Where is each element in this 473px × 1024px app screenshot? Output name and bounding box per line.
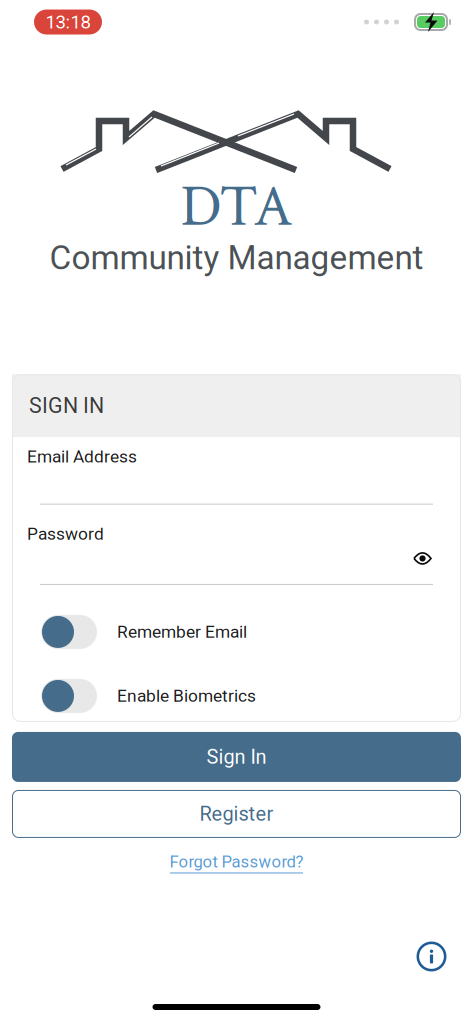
- button[interactable]: Forgot Password?: [169, 852, 303, 873]
- staticText: Community Management: [49, 238, 423, 277]
- staticText: SIGN IN: [29, 393, 104, 418]
- button[interactable]: Remember Email: [12, 615, 461, 649]
- staticText: Forgot Password?: [169, 852, 303, 871]
- button[interactable]: Enable Biometrics: [12, 679, 461, 713]
- staticText: Sign In: [206, 745, 266, 769]
- button[interactable]: Information: [416, 941, 447, 972]
- staticText: Register: [199, 802, 273, 826]
- button[interactable]: Show password: [413, 551, 432, 566]
- staticText: DTA: [180, 169, 292, 245]
- staticText: 13:18: [45, 11, 90, 33]
- staticText: Email Address: [27, 446, 137, 467]
- button[interactable]: Sign In: [12, 732, 461, 782]
- button[interactable]: Register: [12, 790, 461, 838]
- staticText: Remember Email: [117, 622, 247, 642]
- staticText: Password: [27, 524, 104, 544]
- staticText: Enable Biometrics: [117, 686, 256, 706]
